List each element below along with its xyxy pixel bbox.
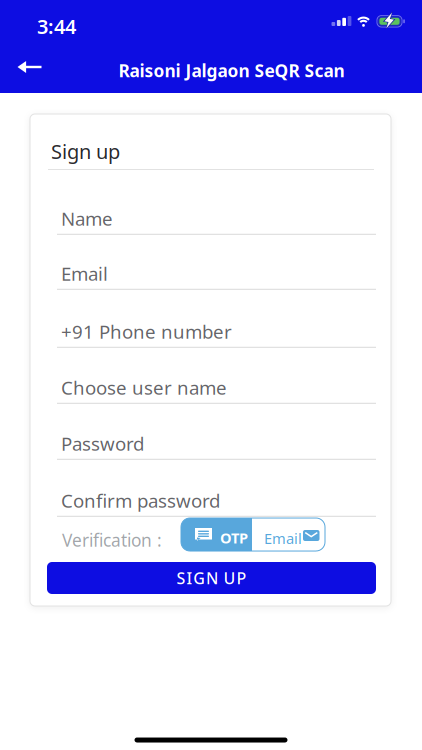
textField[interactable]: Choose user name <box>57 375 376 404</box>
button[interactable]: Email <box>252 518 325 551</box>
staticText: Sign up <box>51 138 120 165</box>
staticText: Verification : <box>62 528 162 551</box>
staticText: Raisoni Jalgaon SeQR Scan <box>118 59 344 82</box>
staticText: SIGN UP <box>177 567 246 589</box>
button[interactable]: SIGN UP <box>47 562 376 594</box>
button[interactable]: OTP <box>181 518 252 551</box>
secureTextField[interactable]: Password <box>57 431 376 460</box>
textField[interactable]: Email <box>57 261 376 290</box>
staticText: Name <box>61 206 113 231</box>
button[interactable]: Back <box>7 49 51 85</box>
staticText: Confirm password <box>61 488 220 513</box>
staticText: Email <box>264 528 302 548</box>
staticText: 3:44 <box>37 13 76 40</box>
staticText: Choose user name <box>61 375 227 400</box>
staticText: OTP <box>220 528 248 547</box>
secureTextField[interactable]: Confirm password <box>57 488 376 517</box>
textField[interactable]: Name <box>57 206 376 235</box>
textField[interactable]: +91 Phone number <box>57 319 376 348</box>
staticText: +91 Phone number <box>61 319 232 344</box>
staticText: Password <box>61 431 144 456</box>
staticText: Email <box>61 261 108 286</box>
